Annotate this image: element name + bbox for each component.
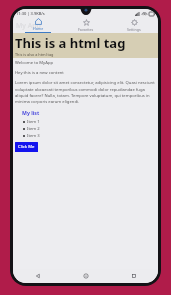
staticText: This is a html tag xyxy=(15,34,126,52)
staticText: Welcome to MyApp xyxy=(15,60,54,66)
button[interactable]: Home xyxy=(62,269,110,283)
button[interactable]: Home xyxy=(13,18,62,33)
staticText: Hey this is a new content xyxy=(15,70,64,76)
staticText: My list xyxy=(22,109,40,116)
staticText: Favorites xyxy=(78,27,94,32)
staticText: Lorem ipsum dolor sit amet consectetur, … xyxy=(15,80,156,104)
button[interactable]: Back xyxy=(13,269,62,283)
staticText: 11:30 | 3.9KB/s xyxy=(16,11,45,16)
staticText: Click Me xyxy=(18,144,35,150)
staticText: This is also a html tag xyxy=(15,52,54,57)
staticText: Settings xyxy=(127,27,141,32)
staticText: Home xyxy=(33,26,44,31)
staticText: My App xyxy=(16,21,41,31)
button[interactable]: Recents xyxy=(110,269,158,283)
staticText: Item 3 xyxy=(27,133,40,139)
staticText: Item 2 xyxy=(27,126,40,132)
button[interactable]: Click Me xyxy=(15,142,38,152)
button[interactable]: Favorites xyxy=(62,18,110,33)
button[interactable]: Settings xyxy=(110,18,158,33)
staticText: Item 1 xyxy=(27,119,40,125)
